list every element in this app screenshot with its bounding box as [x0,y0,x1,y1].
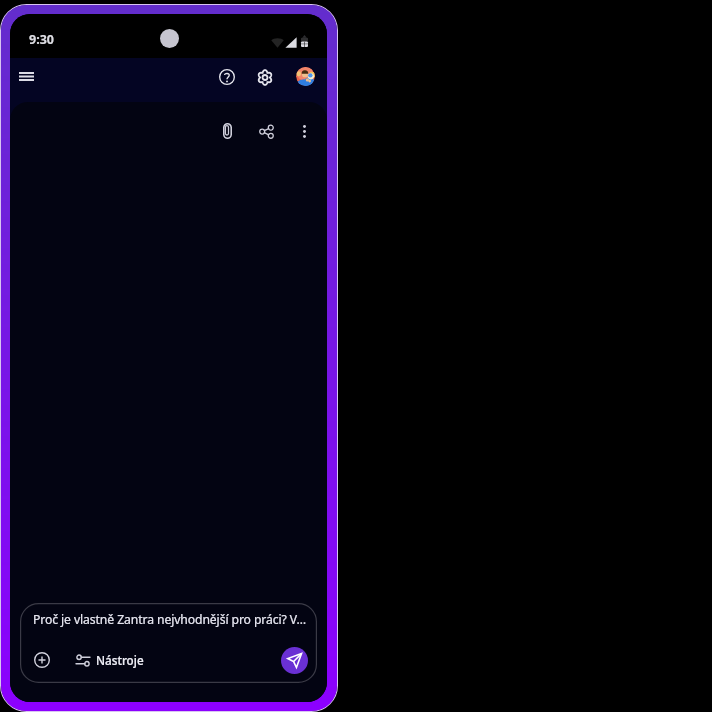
staticText: 9:30 [29,31,54,48]
staticText: Nástroje [96,652,144,668]
button[interactable]: Attach file [210,114,244,148]
button[interactable]: Menu [10,59,43,93]
button[interactable]: Nástroje [74,649,146,672]
staticText: Proč je vlastně Zantra nejvhodnější pro … [33,611,306,628]
button[interactable]: More options [287,114,321,148]
button[interactable]: Add attachment [27,645,57,675]
button[interactable]: Send [281,647,308,674]
button[interactable]: Help [210,60,244,94]
button[interactable]: Account [288,59,322,93]
button[interactable]: Share [249,114,283,148]
button[interactable]: Settings [248,60,282,94]
